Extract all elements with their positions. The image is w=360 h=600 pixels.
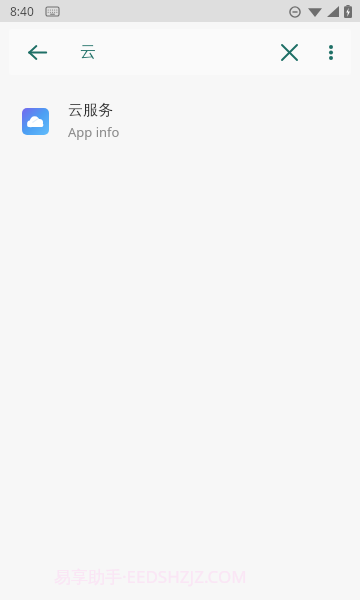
- staticText: 易享助手·EEDSHZJZ.COM: [54, 565, 247, 588]
- staticText: App info: [68, 123, 120, 141]
- staticText: 云: [80, 42, 96, 62]
- button[interactable]: 云服务: [0, 93, 360, 149]
- button[interactable]: Back: [17, 32, 57, 72]
- staticText: 云服务: [68, 101, 113, 120]
- staticText: 8:40: [10, 3, 34, 19]
- button[interactable]: Clear: [267, 30, 311, 74]
- button[interactable]: More options: [311, 32, 351, 72]
